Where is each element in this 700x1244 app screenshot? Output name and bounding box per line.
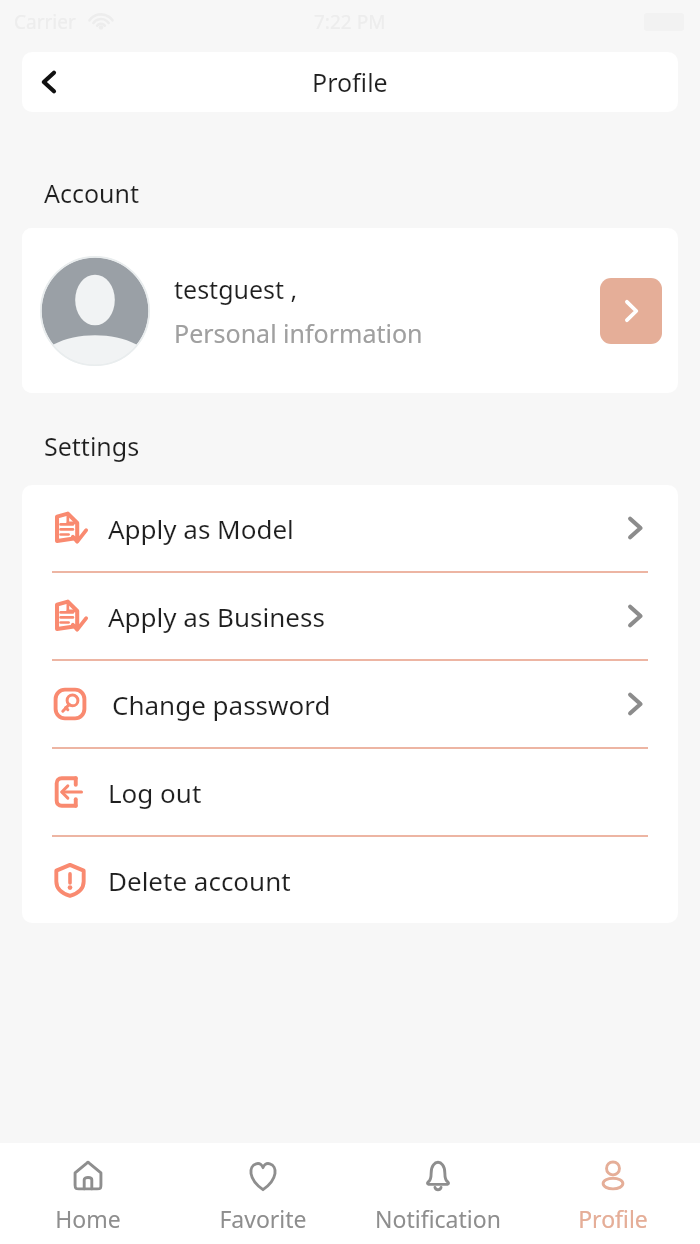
button[interactable]: Apply as Business (22, 573, 678, 659)
staticText: Apply as Business (108, 599, 624, 634)
button[interactable]: Apply as Model (22, 485, 678, 571)
button[interactable]: Personal information (600, 278, 662, 344)
staticText: Home (55, 1203, 121, 1234)
staticText: Notification (375, 1203, 501, 1234)
button[interactable]: Log out (22, 749, 678, 835)
button[interactable]: Notification (350, 1143, 525, 1244)
staticText: Account (44, 176, 140, 210)
staticText: Change password (112, 687, 624, 722)
button[interactable]: Favorite (175, 1143, 350, 1244)
staticText: Delete account (108, 863, 624, 898)
staticText: testguest , (174, 272, 298, 306)
staticText: Profile (312, 65, 388, 99)
button[interactable]: Profile (525, 1143, 700, 1244)
staticText: Log out (108, 775, 624, 810)
button[interactable]: testguest , (22, 228, 678, 393)
staticText: Favorite (219, 1203, 307, 1234)
button[interactable]: Change password (22, 661, 678, 747)
staticText: Profile (578, 1203, 648, 1234)
staticText: Carrier (14, 9, 76, 35)
staticText: Settings (44, 429, 140, 463)
staticText: 7:22 PM (314, 9, 386, 35)
button[interactable]: Back (22, 54, 78, 110)
staticText: Personal information (174, 316, 423, 350)
button[interactable]: Delete account (22, 837, 678, 923)
staticText: Apply as Model (108, 511, 624, 546)
button[interactable]: Home (0, 1143, 175, 1244)
